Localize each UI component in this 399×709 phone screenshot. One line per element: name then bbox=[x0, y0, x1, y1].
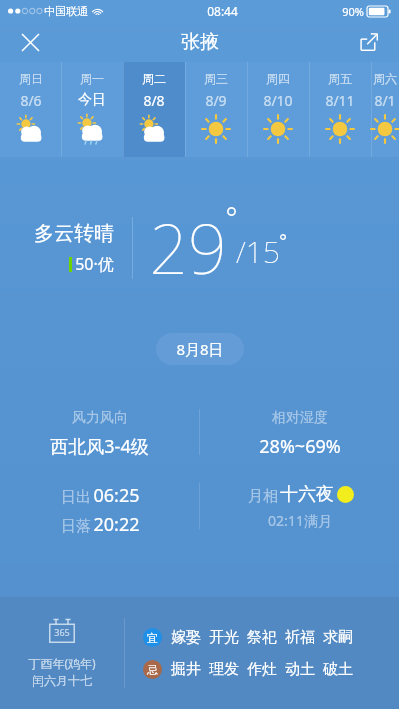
staticText: 08:44 bbox=[207, 3, 238, 19]
staticText: 求嗣 bbox=[323, 628, 353, 647]
staticText: 祭祀 bbox=[247, 628, 277, 647]
staticText: 多云转晴 bbox=[34, 221, 114, 246]
button[interactable]: 周一 bbox=[61, 62, 123, 157]
staticText: 理发 bbox=[209, 660, 239, 679]
staticText: 周四 bbox=[266, 71, 290, 86]
staticText: 西北风3-4级 bbox=[50, 434, 149, 459]
staticText: 8/11 bbox=[325, 91, 355, 110]
button[interactable]: 周四 bbox=[247, 62, 309, 157]
staticText: 28%~69% bbox=[259, 434, 341, 459]
staticText: 开光 bbox=[209, 628, 239, 647]
staticText: 丁酉年(鸡年) bbox=[28, 655, 96, 671]
staticText: 8/10 bbox=[263, 91, 293, 110]
staticText: 风力风向 bbox=[72, 409, 128, 427]
button[interactable]: 8月8日 bbox=[156, 333, 244, 365]
staticText: 祈福 bbox=[285, 628, 315, 647]
staticText: 作灶 bbox=[247, 660, 277, 679]
staticText: 周二 bbox=[142, 71, 166, 86]
staticText: 日出 bbox=[59, 486, 93, 506]
staticText: 日落 bbox=[59, 515, 93, 535]
staticText: 8/6 bbox=[20, 91, 42, 110]
staticText: 8/8 bbox=[143, 91, 165, 110]
staticText: 嫁娶 bbox=[171, 628, 201, 647]
staticText: 忌 bbox=[147, 663, 158, 677]
button[interactable]: 周日 bbox=[0, 62, 61, 157]
staticText: 02:11满月 bbox=[268, 511, 332, 530]
staticText: 周三 bbox=[204, 71, 228, 86]
staticText: 8/1 bbox=[374, 91, 396, 110]
staticText: /15 bbox=[236, 231, 280, 272]
staticText: 中国联通 bbox=[44, 4, 88, 18]
staticText: 50·优 bbox=[75, 253, 114, 275]
button[interactable]: 周二 bbox=[123, 62, 185, 157]
staticText: 闰六月十七 bbox=[32, 673, 92, 688]
staticText: 周六 bbox=[373, 71, 397, 86]
staticText: 宜 bbox=[147, 631, 158, 645]
staticText: 动土 bbox=[285, 660, 315, 679]
staticText: 29 bbox=[149, 201, 227, 294]
staticText: 破土 bbox=[323, 660, 353, 679]
staticText: 张掖 bbox=[181, 30, 219, 54]
button[interactable]: 周五 bbox=[309, 62, 371, 157]
button[interactable]: Close bbox=[10, 22, 50, 62]
staticText: 今日 bbox=[78, 91, 106, 109]
staticText: 周五 bbox=[328, 71, 352, 86]
button[interactable]: 365 bbox=[0, 597, 399, 709]
button[interactable]: 周六 bbox=[371, 62, 399, 157]
staticText: 周一 bbox=[80, 71, 104, 86]
staticText: 06:25 bbox=[93, 483, 140, 508]
staticText: 相对湿度 bbox=[272, 409, 328, 427]
staticText: 周日 bbox=[19, 71, 43, 86]
staticText: 掘井 bbox=[171, 660, 201, 679]
staticText: 月相 bbox=[246, 485, 280, 505]
staticText: 8月8日 bbox=[176, 339, 224, 359]
button[interactable]: 周三 bbox=[185, 62, 247, 157]
staticText: 90% bbox=[342, 4, 364, 19]
staticText: 十六夜 bbox=[280, 483, 334, 506]
staticText: 8/9 bbox=[205, 91, 227, 110]
staticText: 365 bbox=[54, 626, 70, 638]
staticText: 20:22 bbox=[93, 512, 140, 537]
button[interactable]: Share bbox=[349, 22, 389, 62]
